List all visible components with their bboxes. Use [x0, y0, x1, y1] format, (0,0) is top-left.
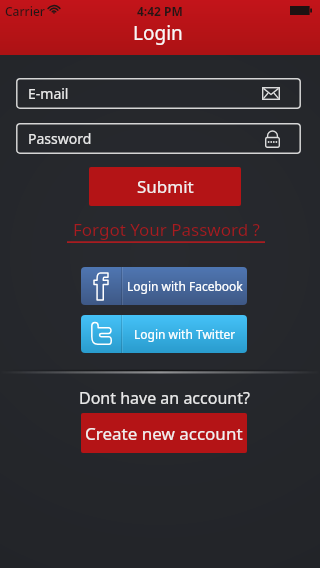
button[interactable]: Login with Twitter: [81, 315, 247, 353]
button[interactable]: Login with Facebook: [81, 267, 247, 305]
button[interactable]: Email address field: [16, 78, 301, 109]
staticText: Login with Facebook: [127, 278, 243, 294]
button[interactable]: Create new account: [81, 413, 247, 453]
staticText: Password: [28, 129, 92, 148]
staticText: 4:42 PM: [137, 3, 183, 19]
button[interactable]: Forgot Your Password ?: [67, 219, 265, 245]
staticText: Submit: [137, 175, 194, 198]
staticText: Dont have an account?: [79, 387, 250, 409]
staticText: Forgot Your Password ?: [73, 218, 260, 241]
button[interactable]: Submit: [89, 167, 241, 206]
button[interactable]: Password field: [16, 123, 301, 154]
staticText: Login: [133, 20, 183, 46]
staticText: Login with Twitter: [134, 326, 236, 342]
staticText: Create new account: [85, 422, 243, 445]
staticText: E-mail: [28, 84, 69, 103]
staticText: Carrier: [5, 3, 45, 19]
